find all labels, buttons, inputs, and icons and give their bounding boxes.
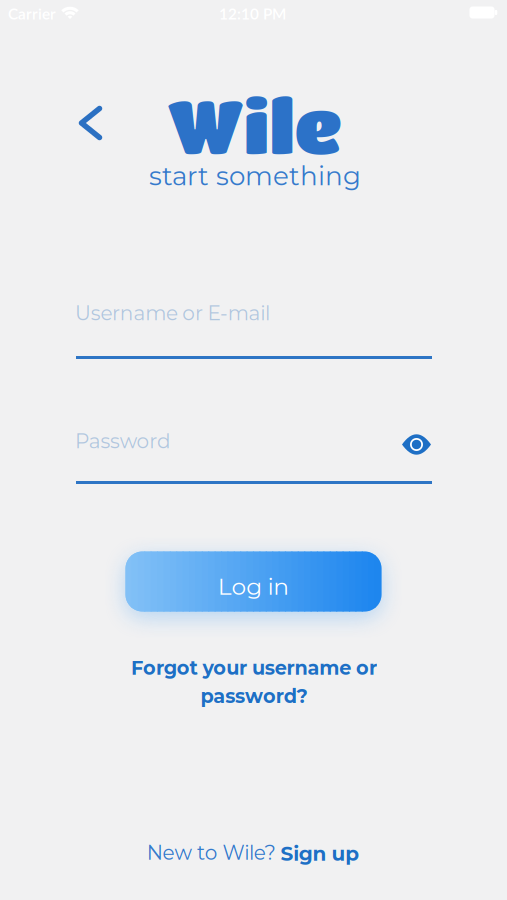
staticText: Password: [75, 429, 171, 453]
staticText: Log in: [218, 572, 289, 601]
staticText: 12:10 PM: [219, 4, 286, 23]
button[interactable]: [69, 96, 111, 149]
staticText: start something: [149, 160, 361, 192]
staticText: Username or E-mail: [75, 301, 270, 325]
button[interactable]: New to Wile?: [147, 840, 359, 865]
staticText: Forgot your username or: [131, 656, 377, 679]
staticText: Carrier: [8, 4, 56, 23]
button[interactable]: Log in: [125, 551, 381, 611]
staticText: Sign up: [281, 841, 359, 866]
button[interactable]: Forgot your username or: [131, 656, 377, 708]
staticText: password?: [200, 684, 308, 708]
staticText: New to Wile?: [147, 840, 276, 865]
button[interactable]: [394, 426, 439, 462]
staticText: Wile: [167, 82, 342, 167]
